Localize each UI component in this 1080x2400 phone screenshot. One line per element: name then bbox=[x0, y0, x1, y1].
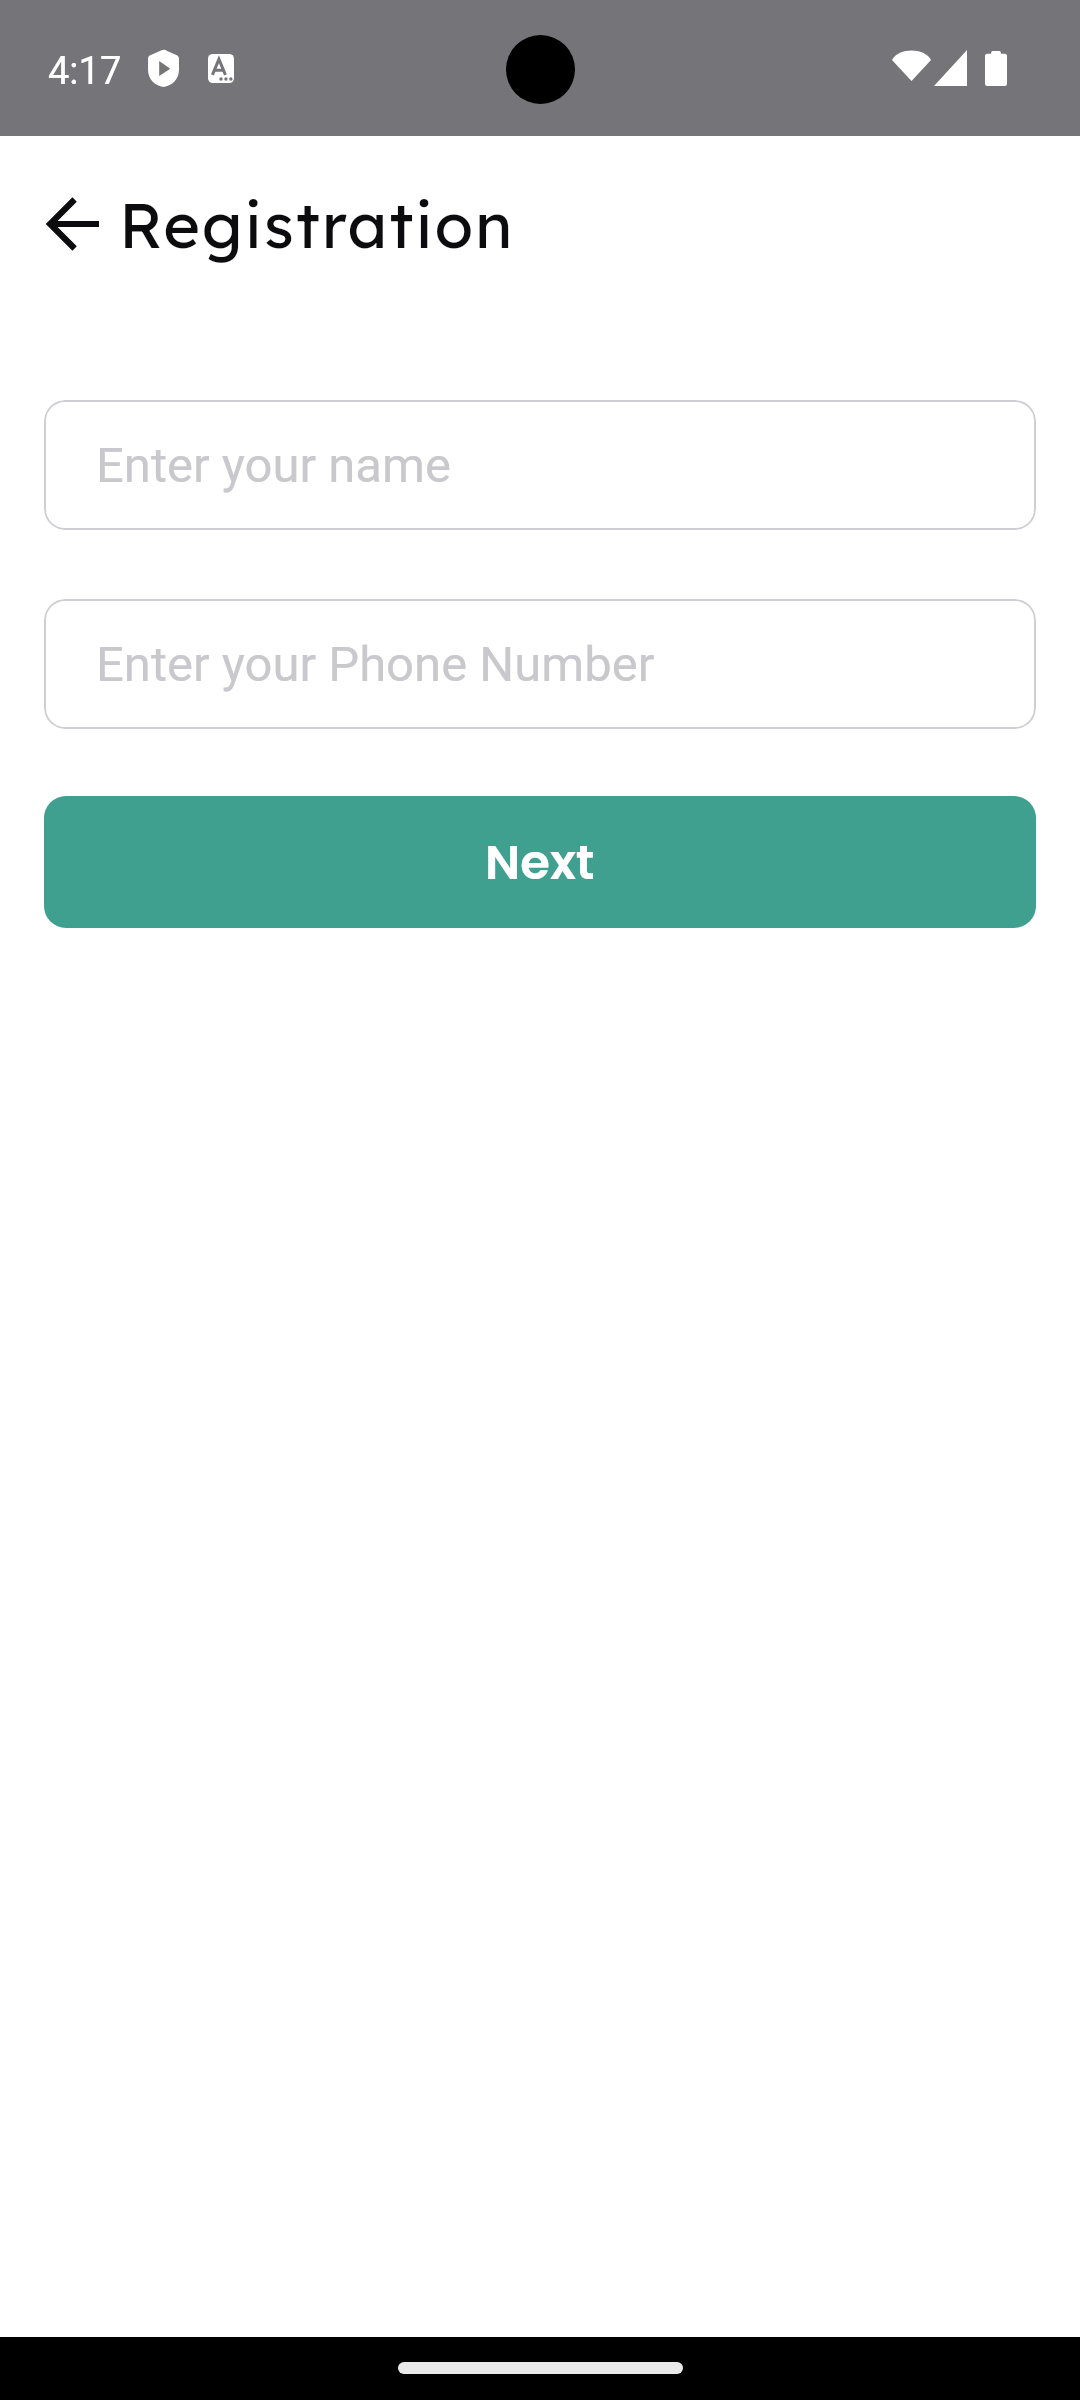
button[interactable]: Next bbox=[44, 796, 1036, 928]
button[interactable]: Enter your Phone Number bbox=[44, 599, 1036, 729]
staticText: Enter your Phone Number bbox=[96, 636, 655, 693]
staticText: Next bbox=[485, 829, 595, 896]
button[interactable]: Back bbox=[23, 182, 123, 266]
staticText: Registration bbox=[119, 185, 515, 264]
staticText: 4:17 bbox=[48, 49, 122, 94]
staticText: Enter your name bbox=[96, 437, 451, 494]
button[interactable]: Enter your name bbox=[44, 400, 1036, 530]
